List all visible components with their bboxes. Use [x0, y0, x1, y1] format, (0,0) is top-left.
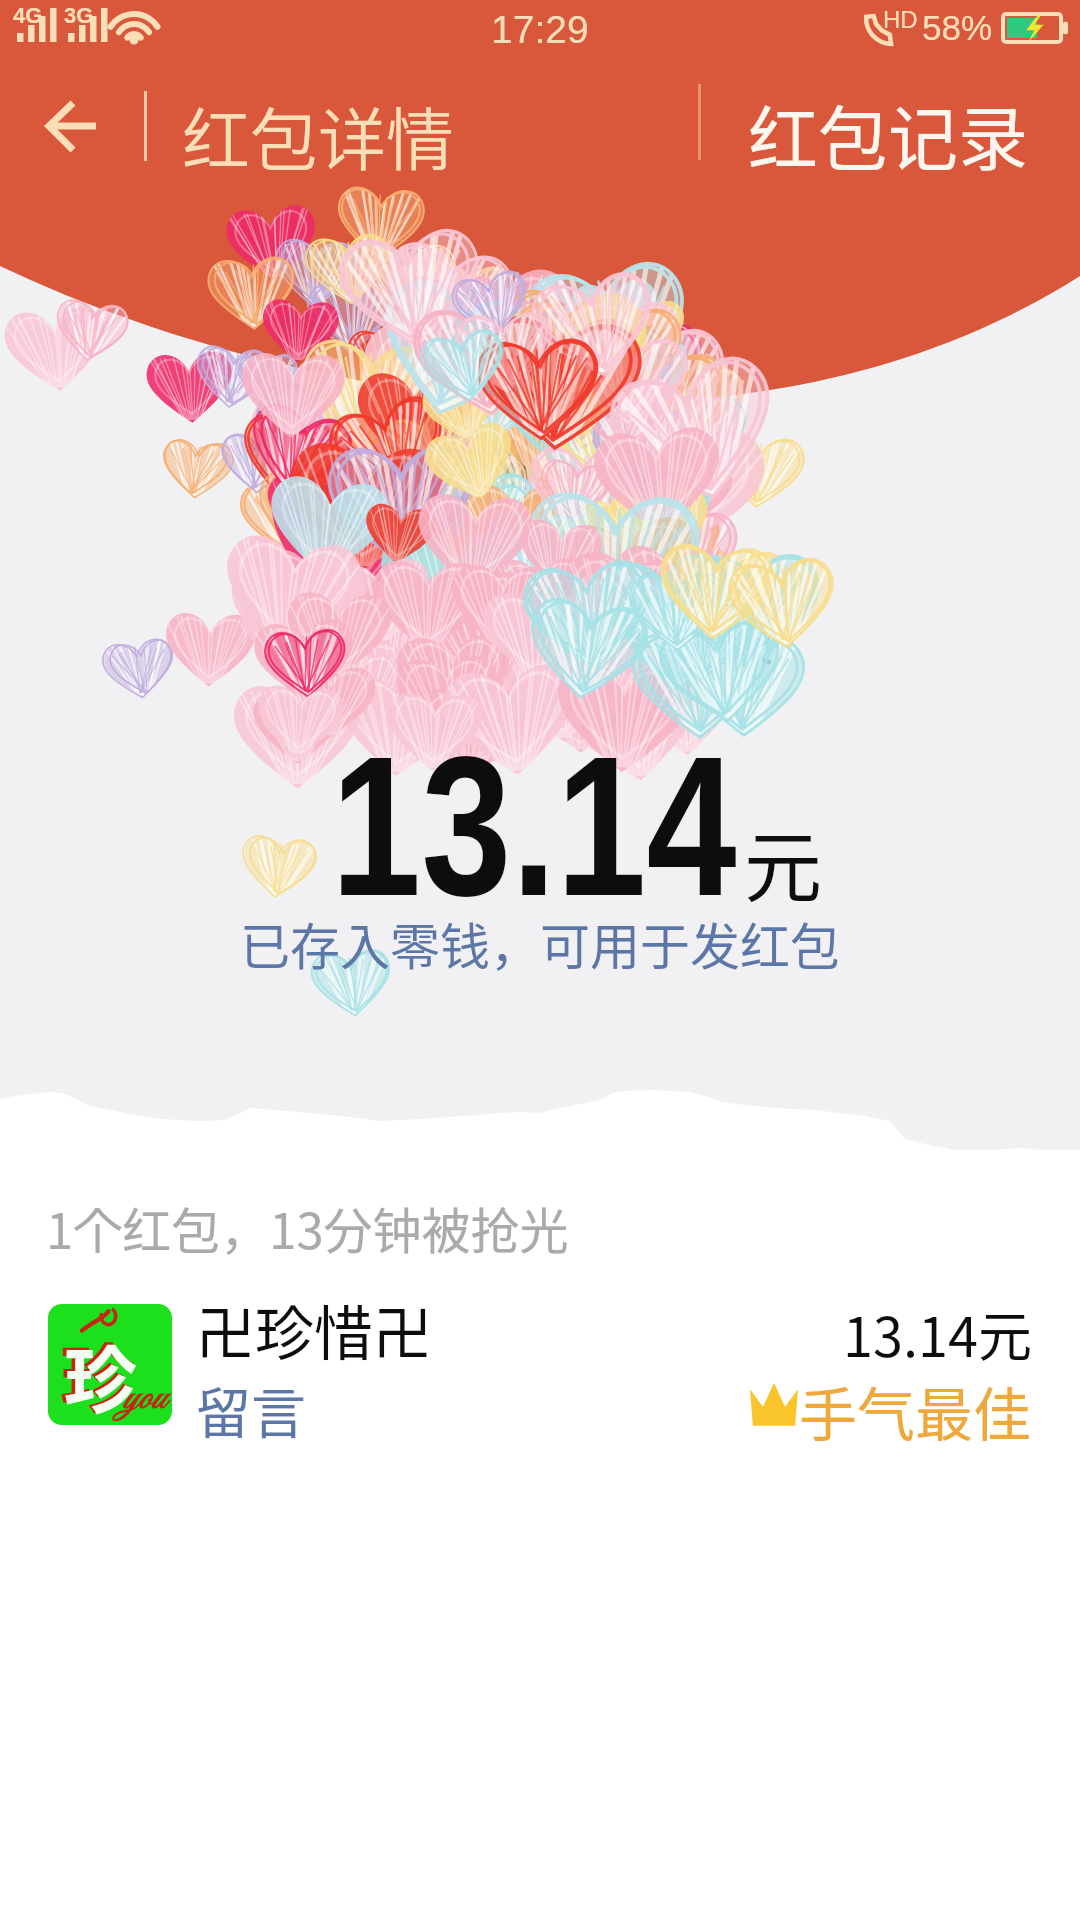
button[interactable] — [0, 1282, 1080, 1450]
button[interactable]: 红包记录 — [748, 84, 1028, 185]
button[interactable]: 红包详情 — [182, 86, 455, 184]
button[interactable]: Back — [22, 80, 114, 172]
